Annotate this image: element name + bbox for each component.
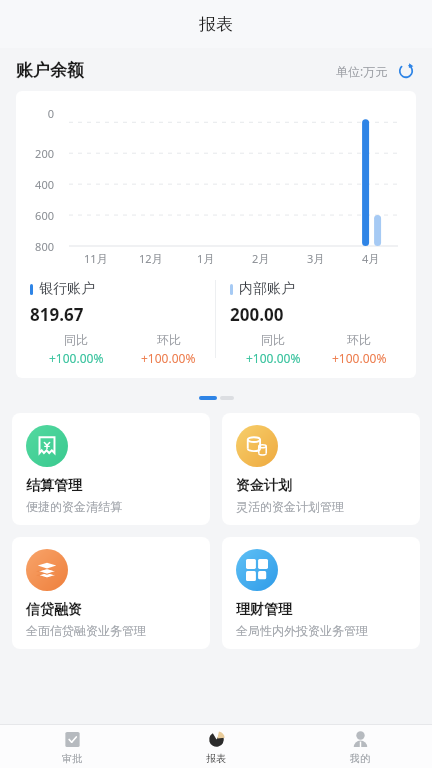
staticText: 200.00 <box>230 303 284 326</box>
staticText: 2月 <box>252 251 270 266</box>
staticText: 审批 <box>62 752 82 765</box>
staticText: 800 <box>16 239 54 254</box>
staticText: +100.00% <box>49 350 104 366</box>
staticText: 819.67 <box>30 303 84 326</box>
staticText: 600 <box>16 208 54 223</box>
staticText: 11月 <box>84 251 108 266</box>
staticText: 报表 <box>206 752 226 765</box>
button[interactable]: 我的 <box>288 725 432 768</box>
staticText: 环比 <box>157 332 181 347</box>
staticText: +100.00% <box>332 350 387 366</box>
button[interactable]: 报表 <box>144 725 288 768</box>
staticText: 4月 <box>362 251 380 266</box>
button[interactable]: 刷新 <box>396 61 416 81</box>
staticText: 资金计划 <box>236 477 292 495</box>
staticText: 灵活的资金计划管理 <box>236 499 344 514</box>
staticText: 同比 <box>64 332 88 347</box>
button[interactable]: 审批 <box>0 725 144 768</box>
staticText: +100.00% <box>246 350 301 366</box>
staticText: 理财管理 <box>236 601 292 619</box>
staticText: 3月 <box>307 251 325 266</box>
staticText: 环比 <box>347 332 371 347</box>
staticText: 0 <box>16 106 54 121</box>
staticText: 我的 <box>350 752 370 765</box>
button[interactable]: 资金计划 <box>222 413 420 525</box>
staticText: 内部账户 <box>239 280 295 298</box>
staticText: 银行账户 <box>39 280 95 298</box>
staticText: +100.00% <box>141 350 196 366</box>
staticText: 12月 <box>139 251 163 266</box>
staticText: 200 <box>16 146 54 161</box>
staticText: 全面信贷融资业务管理 <box>26 623 146 638</box>
staticText: 全局性内外投资业务管理 <box>236 623 368 638</box>
staticText: 结算管理 <box>26 477 82 495</box>
staticText: 400 <box>16 177 54 192</box>
button[interactable]: 理财管理 <box>222 537 420 649</box>
staticText: 信贷融资 <box>26 601 82 619</box>
staticText: 账户余额 <box>16 60 84 81</box>
staticText: 报表 <box>199 14 233 35</box>
staticText: 便捷的资金清结算 <box>26 499 122 514</box>
staticText: 1月 <box>197 251 215 266</box>
staticText: 同比 <box>261 332 285 347</box>
button[interactable]: 结算管理 <box>12 413 210 525</box>
staticText: 单位:万元 <box>336 63 388 79</box>
button[interactable]: 信贷融资 <box>12 537 210 649</box>
